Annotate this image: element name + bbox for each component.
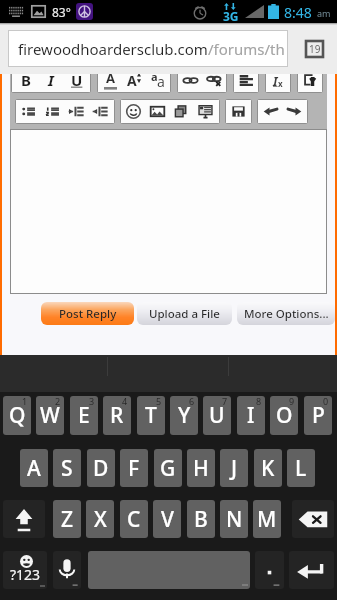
staticText: Z	[61, 505, 74, 534]
button[interactable]: U	[203, 396, 231, 435]
button[interactable]: ol	[40, 100, 64, 123]
button[interactable]: W	[36, 396, 64, 435]
button[interactable]: T	[137, 396, 165, 435]
staticText: B	[194, 505, 208, 534]
staticText: B	[21, 70, 31, 90]
button[interactable]: More Options...	[237, 302, 335, 325]
button[interactable]: image	[145, 100, 169, 123]
button[interactable]: Post Reply	[41, 302, 134, 325]
button[interactable]: fcolor	[98, 69, 122, 92]
staticText: firewoodhoardersclub.com	[18, 39, 208, 59]
button[interactable]: N	[220, 500, 248, 538]
button[interactable]: Voice input	[53, 551, 81, 589]
button[interactable]: E	[70, 396, 98, 435]
staticText: x	[278, 78, 283, 89]
button[interactable]: J	[220, 449, 248, 487]
staticText: A	[127, 71, 137, 90]
button[interactable]: ffont	[146, 69, 170, 92]
staticText: a	[157, 72, 165, 91]
button[interactable]: K	[254, 449, 282, 487]
staticText: 3G	[223, 8, 239, 24]
button[interactable]: P	[304, 396, 332, 435]
button[interactable]: S	[53, 449, 81, 487]
button[interactable]: firewoodhoardersclub.com	[9, 31, 287, 66]
staticText: a	[151, 69, 158, 84]
button[interactable]: Backspace	[292, 500, 334, 538]
staticText: am	[317, 7, 331, 19]
button[interactable]: L	[287, 449, 315, 487]
button[interactable]: unlink	[202, 69, 226, 92]
staticText: U	[71, 70, 83, 90]
staticText: 5	[156, 396, 162, 407]
button[interactable]: Z	[53, 500, 81, 538]
staticText: Y	[178, 401, 191, 430]
staticText: V	[161, 505, 174, 534]
button[interactable]: B	[187, 500, 215, 538]
button[interactable]: I	[38, 69, 64, 92]
staticText: ?123	[10, 565, 41, 584]
button[interactable]: G	[154, 449, 182, 487]
button[interactable]: Enter	[289, 551, 334, 589]
staticText: E	[78, 401, 90, 430]
staticText: 8	[256, 396, 262, 407]
button[interactable]: media	[169, 100, 193, 123]
button[interactable]: ul	[16, 100, 40, 123]
staticText: 9	[289, 396, 295, 407]
button[interactable]: save	[226, 100, 251, 123]
button[interactable]: M	[253, 500, 281, 538]
button[interactable]: indent	[64, 100, 88, 123]
staticText: D	[93, 454, 109, 483]
button[interactable]: Y	[170, 396, 198, 435]
button[interactable]: quote	[193, 100, 217, 123]
button[interactable]: A	[20, 449, 48, 487]
button[interactable]: V	[153, 500, 181, 538]
button[interactable]: F	[120, 449, 148, 487]
button[interactable]: Period	[255, 551, 284, 589]
button[interactable]: I	[237, 396, 265, 435]
staticText: 2	[55, 396, 61, 407]
staticText: Upload a File	[149, 306, 220, 322]
button[interactable]: link	[178, 69, 202, 92]
button[interactable]: tools	[298, 69, 322, 92]
staticText: More Options...	[244, 306, 329, 322]
button[interactable]: D	[87, 449, 115, 487]
button[interactable]: undo	[258, 100, 282, 123]
staticText: A	[106, 69, 115, 87]
button[interactable]: U	[64, 69, 90, 92]
button[interactable]: C	[120, 500, 148, 538]
staticText: Post Reply	[59, 306, 117, 322]
button[interactable]: X	[86, 500, 114, 538]
staticText: T	[145, 401, 157, 430]
staticText: A	[27, 454, 41, 483]
button[interactable]: Upload a File	[137, 302, 232, 325]
button[interactable]: outdent	[88, 100, 112, 123]
staticText: 7	[222, 396, 228, 407]
staticText: S	[61, 454, 73, 483]
button[interactable]: redo	[282, 100, 306, 123]
button[interactable]: fsize	[122, 69, 146, 92]
staticText: M	[257, 505, 277, 534]
staticText: 8:48	[284, 3, 312, 22]
button[interactable]: Symbols and emoji	[3, 551, 47, 589]
button[interactable]: H	[187, 449, 215, 487]
button[interactable]: Q	[3, 396, 31, 435]
staticText: 0	[323, 396, 329, 407]
staticText: C	[127, 505, 141, 534]
button[interactable]: smiley	[121, 100, 145, 123]
button[interactable]: Shift	[3, 500, 45, 538]
button[interactable]: removefmt	[266, 69, 290, 92]
button[interactable]: R	[103, 396, 131, 435]
button[interactable]: B	[12, 69, 38, 92]
staticText: /forums/th	[208, 39, 285, 59]
button[interactable]: align	[234, 69, 258, 92]
staticText: U	[209, 401, 225, 430]
staticText: L	[295, 454, 307, 483]
staticText: W	[40, 401, 60, 430]
staticText: O	[276, 401, 293, 430]
staticText: I	[48, 70, 54, 90]
staticText: 3	[89, 396, 95, 407]
button[interactable]: O	[270, 396, 298, 435]
button[interactable]: Open tabs: 19	[306, 41, 323, 57]
